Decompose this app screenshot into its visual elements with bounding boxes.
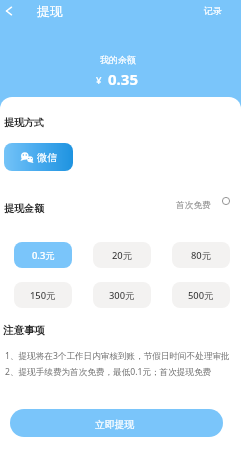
button[interactable]: 500元 bbox=[172, 282, 230, 308]
staticText: ¥ bbox=[96, 74, 102, 87]
staticText: 0.35 bbox=[108, 69, 138, 89]
staticText: 首次免费 bbox=[176, 200, 211, 211]
staticText: 500元 bbox=[188, 289, 214, 302]
staticText: 2、提现手续费为首次免费，最低0.1元；首次提现免费 bbox=[5, 366, 212, 378]
button[interactable]: 300元 bbox=[93, 282, 151, 308]
button[interactable]: 20元 bbox=[93, 242, 151, 268]
staticText: 提现金额 bbox=[4, 202, 44, 215]
button[interactable]: 记录 bbox=[196, 0, 230, 21]
button[interactable]: 150元 bbox=[14, 282, 72, 308]
button[interactable]: Back bbox=[0, 1, 19, 21]
staticText: 微信 bbox=[37, 151, 57, 164]
staticText: 300元 bbox=[109, 289, 135, 302]
staticText: 我的余额 bbox=[100, 54, 136, 65]
button[interactable]: 微信 bbox=[4, 143, 73, 171]
staticText: 1、提现将在3个工作日内审核到账，节假日时间不处理审批 bbox=[5, 350, 230, 362]
staticText: 记录 bbox=[204, 5, 222, 16]
staticText: 80元 bbox=[191, 249, 212, 262]
staticText: 20元 bbox=[112, 249, 133, 262]
staticText: 提现方式 bbox=[4, 116, 44, 129]
staticText: 0.3元 bbox=[32, 249, 55, 262]
button[interactable]: 80元 bbox=[172, 242, 230, 268]
other: Help bbox=[222, 197, 230, 205]
staticText: 立即提现 bbox=[95, 419, 135, 431]
staticText: 提现 bbox=[37, 3, 63, 19]
button[interactable]: 0.3元 bbox=[14, 242, 72, 268]
staticText: 150元 bbox=[30, 289, 56, 302]
button[interactable]: 立即提现 bbox=[10, 409, 223, 437]
staticText: 注意事项 bbox=[3, 324, 45, 337]
